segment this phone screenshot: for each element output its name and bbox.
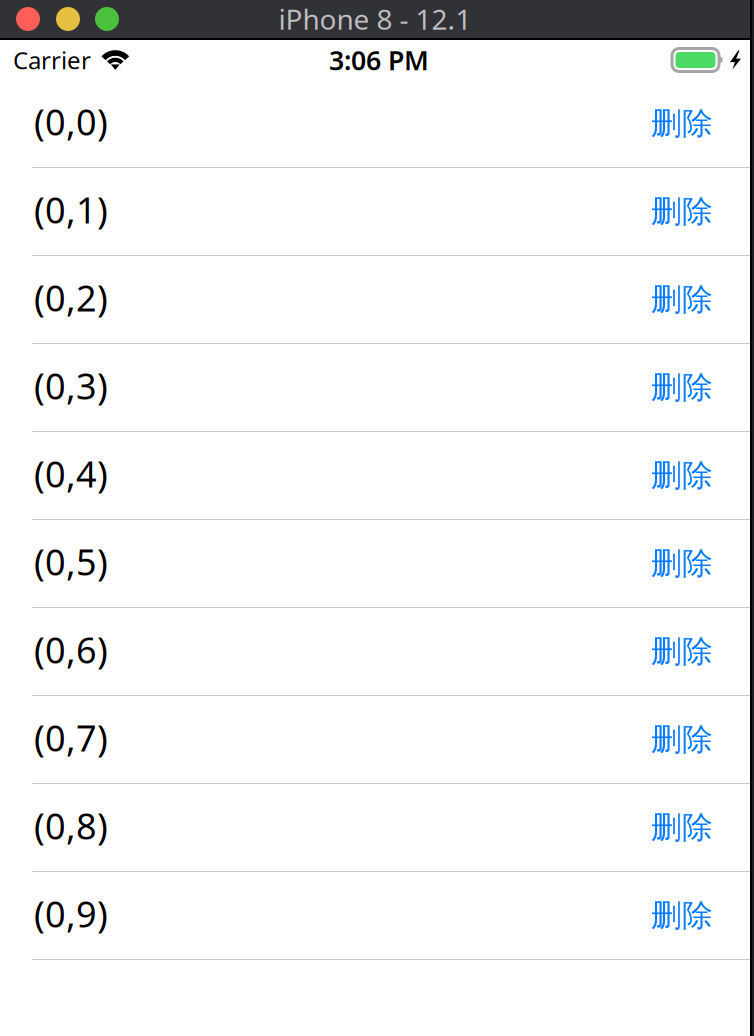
staticText: (0,6) [34,626,108,673]
button[interactable]: 删除 [639,881,725,950]
staticText: (0,2) [34,274,108,321]
staticText: Carrier [13,44,91,76]
staticText: 删除 [651,281,713,318]
button[interactable]: 删除 [639,529,725,598]
staticText: (0,7) [34,714,108,761]
staticText: 删除 [651,105,713,142]
button[interactable]: 删除 [639,89,725,158]
button[interactable]: 删除 [639,617,725,686]
button[interactable]: 删除 [639,265,725,334]
staticText: 删除 [651,633,713,670]
button[interactable]: 删除 [639,705,725,774]
staticText: 删除 [651,545,713,582]
button[interactable]: 删除 [639,353,725,422]
staticText: 删除 [651,193,713,230]
staticText: 3:06 PM [329,42,429,78]
staticText: (0,3) [34,362,108,409]
staticText: (0,0) [34,98,108,145]
staticText: 删除 [651,457,713,494]
button[interactable]: 删除 [639,793,725,862]
staticText: (0,1) [34,186,108,233]
staticText: (0,5) [34,538,108,585]
staticText: 删除 [651,897,713,934]
button[interactable]: 删除 [639,177,725,246]
button[interactable]: 删除 [639,441,725,510]
staticText: (0,9) [34,890,108,937]
button[interactable]: Zoom window [95,7,119,31]
button[interactable]: Close window [16,7,40,31]
staticText: 删除 [651,721,713,758]
staticText: 删除 [651,809,713,846]
staticText: 删除 [651,369,713,406]
staticText: iPhone 8 - 12.1 [278,0,471,38]
button[interactable]: Minimize window [56,7,80,31]
staticText: (0,8) [34,802,108,849]
staticText: (0,4) [34,450,108,497]
